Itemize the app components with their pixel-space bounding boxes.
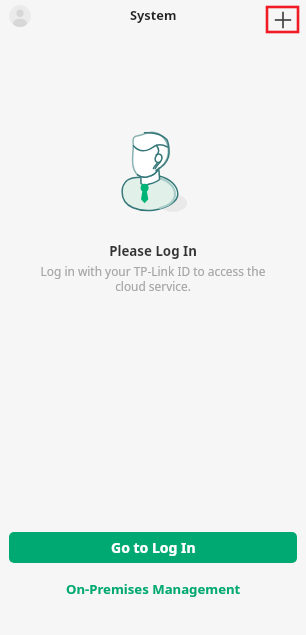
button[interactable]: On-Premises Management xyxy=(0,574,306,604)
staticText: Please Log In xyxy=(0,242,306,260)
staticText: Go to Log In xyxy=(111,538,196,557)
button[interactable]: Account xyxy=(9,5,31,27)
button[interactable]: Add xyxy=(266,6,300,34)
button[interactable]: Go to Log In xyxy=(9,532,297,563)
staticText: On-Premises Management xyxy=(66,580,241,598)
staticText: Log in with your TP-Link ID to access th… xyxy=(38,263,268,294)
staticText: System xyxy=(130,6,177,23)
